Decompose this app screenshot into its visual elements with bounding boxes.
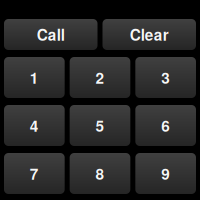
button[interactable]: 5 [70, 105, 130, 146]
staticText: 1 [30, 66, 39, 88]
staticText: 7 [30, 162, 39, 184]
staticText: 8 [95, 162, 104, 184]
button[interactable]: 9 [135, 153, 196, 194]
staticText: 3 [161, 66, 170, 88]
staticText: 4 [30, 114, 39, 136]
button[interactable]: 1 [4, 57, 65, 98]
button[interactable]: 8 [70, 153, 130, 194]
staticText: 9 [161, 162, 170, 184]
button[interactable]: 2 [70, 57, 130, 98]
button[interactable]: 3 [135, 57, 196, 98]
staticText: Call [37, 23, 65, 45]
button[interactable]: 6 [135, 105, 196, 146]
staticText: 2 [95, 66, 104, 88]
button[interactable]: 7 [4, 153, 65, 194]
staticText: Clear [130, 23, 169, 45]
staticText: 5 [95, 114, 104, 136]
button[interactable]: Call [4, 19, 97, 50]
button[interactable]: Clear [102, 19, 196, 50]
staticText: 6 [161, 114, 170, 136]
button[interactable]: 4 [4, 105, 65, 146]
